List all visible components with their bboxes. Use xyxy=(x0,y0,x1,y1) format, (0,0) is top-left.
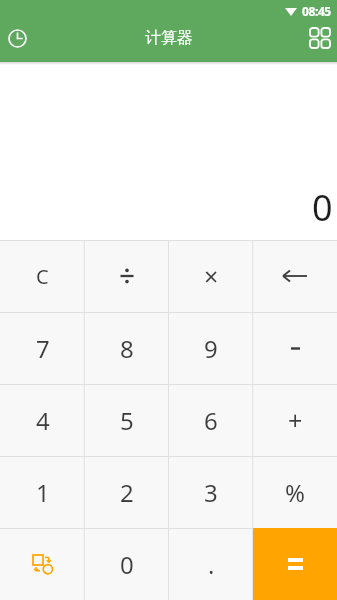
button[interactable]: % xyxy=(253,456,337,528)
staticText: + xyxy=(288,403,303,437)
staticText: 4 xyxy=(36,404,50,437)
staticText: 2 xyxy=(120,476,134,509)
button[interactable] xyxy=(307,25,333,51)
button[interactable]: 0 xyxy=(85,528,169,600)
staticText: 08:45 xyxy=(302,3,331,19)
button[interactable] xyxy=(85,240,169,312)
button[interactable]: 5 xyxy=(85,384,169,456)
staticText: 7 xyxy=(36,332,50,365)
staticText: % xyxy=(285,476,305,509)
button[interactable] xyxy=(253,312,337,384)
button[interactable] xyxy=(4,25,30,51)
button[interactable]: . xyxy=(169,528,253,600)
staticText: 9 xyxy=(204,332,218,365)
button[interactable]: 3 xyxy=(169,456,253,528)
button[interactable] xyxy=(253,240,337,312)
button[interactable]: 4 xyxy=(0,384,85,456)
staticText: 8 xyxy=(120,332,134,365)
staticText: 3 xyxy=(204,476,218,509)
staticText: 0 xyxy=(120,548,134,581)
staticText: 计算器 xyxy=(145,28,193,48)
button[interactable]: 2 xyxy=(85,456,169,528)
button[interactable]: 1 xyxy=(0,456,85,528)
button[interactable]: C xyxy=(0,240,85,312)
staticText: C xyxy=(36,263,49,290)
button[interactable]: 7 xyxy=(0,312,85,384)
staticText: × xyxy=(204,259,219,293)
staticText: 6 xyxy=(204,404,218,437)
button[interactable]: × xyxy=(169,240,253,312)
button[interactable]: + xyxy=(253,384,337,456)
button[interactable]: 6 xyxy=(169,384,253,456)
staticText: 1 xyxy=(36,476,50,509)
button[interactable] xyxy=(253,528,337,600)
button[interactable]: 9 xyxy=(169,312,253,384)
staticText: 5 xyxy=(120,404,134,437)
button[interactable]: 8 xyxy=(85,312,169,384)
staticText: . xyxy=(208,548,215,581)
staticText: 0 xyxy=(312,183,333,232)
button[interactable] xyxy=(0,528,85,600)
